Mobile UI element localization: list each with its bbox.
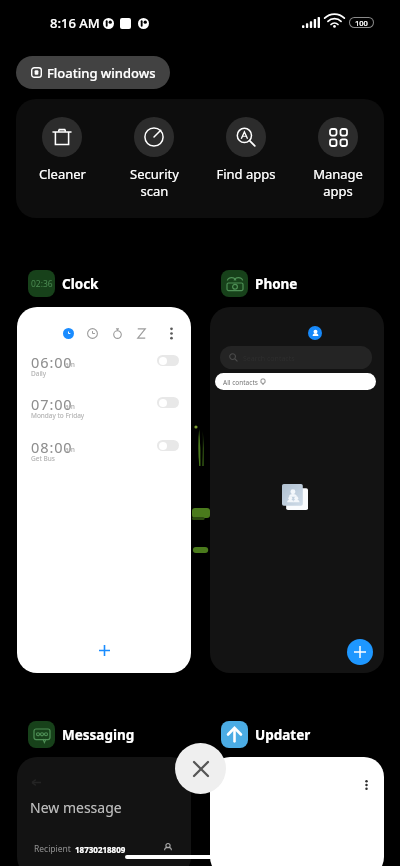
button[interactable]: Floating windows <box>16 56 170 89</box>
staticText: 07:00 <box>31 394 73 414</box>
button[interactable]: More options <box>363 780 370 790</box>
staticText: am <box>65 402 75 411</box>
staticText: Cleaner <box>39 165 86 183</box>
staticText: Manage apps <box>313 165 363 200</box>
staticText: Phone <box>255 275 298 293</box>
button[interactable]: Manage apps <box>292 99 384 218</box>
staticText: Messaging <box>62 726 135 744</box>
staticText: Recipient <box>34 843 71 855</box>
staticText: am <box>65 360 75 369</box>
button[interactable]: Add contact <box>347 639 373 665</box>
button[interactable]: Security scan <box>108 99 200 218</box>
button[interactable]: 06:00 <box>17 307 191 673</box>
staticText: 8:16 AM <box>50 14 100 32</box>
button[interactable]: Updater <box>221 721 311 748</box>
staticText: Clock <box>62 275 99 293</box>
button[interactable]: 06:00 <box>17 351 191 377</box>
button[interactable]: Phone <box>221 270 298 297</box>
staticText: Find apps <box>216 165 276 183</box>
button[interactable]: New message <box>17 757 191 866</box>
staticText: 18730218809 <box>75 844 126 855</box>
button[interactable]: 08:00 <box>17 436 191 462</box>
button[interactable]: Find apps <box>200 99 292 218</box>
staticText: Daily <box>31 369 47 378</box>
button[interactable]: More options <box>210 757 384 866</box>
staticText: All contacts <box>223 378 258 387</box>
button[interactable]: 02:36 <box>28 270 99 297</box>
button[interactable]: 07:00 <box>17 393 191 419</box>
button[interactable]: Close all apps <box>175 743 226 794</box>
staticText: Floating windows <box>47 64 156 82</box>
button[interactable]: Search contacts <box>210 307 384 673</box>
staticText: 02:36 <box>31 278 53 290</box>
staticText: Security scan <box>130 165 179 200</box>
staticText: New message <box>30 798 122 817</box>
staticText: Updater <box>255 726 311 744</box>
staticText: 100 <box>355 18 368 27</box>
staticText: 06:00 <box>31 352 73 372</box>
button[interactable]: Messaging <box>28 721 135 748</box>
staticText: 08:00 <box>31 437 73 457</box>
button[interactable]: Cleaner <box>16 99 108 218</box>
staticText: Get Bus <box>31 454 55 463</box>
staticText: Monday to Friday <box>31 411 85 420</box>
staticText: am <box>65 445 75 454</box>
